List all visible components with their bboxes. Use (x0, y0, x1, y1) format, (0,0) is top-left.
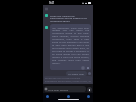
staticText: Chat with Gemini (48, 88, 69, 91)
button[interactable]: Back (45, 94, 50, 99)
staticText: Try again later (68, 72, 85, 75)
button[interactable]: Recents (86, 94, 91, 99)
staticText: Responses may include inaccurate informa… (45, 77, 91, 83)
button[interactable]: Try again later (66, 71, 87, 76)
button[interactable]: Voice input (87, 87, 92, 92)
button[interactable]: Chat with Gemini (44, 86, 86, 92)
staticText: 9:41 (49, 1, 55, 5)
button[interactable]: Home (66, 94, 71, 99)
button[interactable]: More options (88, 72, 91, 75)
button[interactable]: Copy (81, 66, 84, 69)
staticText: When can I restart my subscription and b… (50, 14, 88, 23)
button[interactable]: Share (86, 66, 89, 69)
button[interactable]: Menu (44, 6, 49, 11)
staticText: Yes, absolutely. Once your plan renews y… (52, 26, 89, 65)
